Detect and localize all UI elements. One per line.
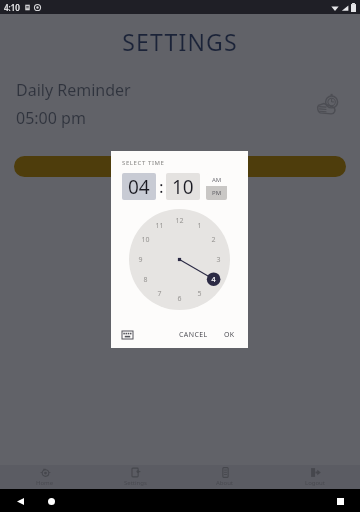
button[interactable]: 5 <box>193 287 206 300</box>
staticText: About <box>216 479 234 487</box>
staticText: : <box>159 175 164 198</box>
button[interactable]: OK <box>220 327 239 343</box>
button[interactable]: 10 <box>139 233 152 246</box>
staticText: Home <box>36 479 54 487</box>
button[interactable]: 6 <box>173 292 186 305</box>
staticText: 5 <box>197 289 202 299</box>
button[interactable]: 4 <box>207 273 220 286</box>
button[interactable] <box>14 156 346 177</box>
button[interactable]: Logout <box>270 465 360 489</box>
button[interactable]: 04 <box>122 173 156 200</box>
staticText: 9 <box>138 255 143 265</box>
staticText: 10 <box>172 174 194 200</box>
button[interactable]: 2 <box>207 233 220 246</box>
staticText: 6 <box>177 294 182 304</box>
button[interactable]: 3 <box>212 253 225 266</box>
button[interactable]: AM <box>206 173 227 186</box>
button[interactable]: Switch to text input <box>119 328 135 342</box>
button[interactable]: 12 <box>173 214 186 227</box>
staticText: 11 <box>155 221 164 231</box>
staticText: 12 <box>175 216 184 226</box>
staticText: 4:10 <box>4 2 20 13</box>
staticText: SELECT TIME <box>122 159 165 167</box>
button[interactable]: 10 <box>166 173 200 200</box>
staticText: 05:00 pm <box>16 107 86 129</box>
button[interactable]: 8 <box>139 273 152 286</box>
button[interactable]: Recent apps <box>333 494 347 508</box>
staticText: AM <box>212 176 222 184</box>
staticText: Daily Reminder <box>16 79 131 101</box>
staticText: OK <box>224 330 235 340</box>
button[interactable]: Daily Reminder <box>0 79 360 129</box>
button[interactable]: 9 <box>134 253 147 266</box>
staticText: 7 <box>157 289 162 299</box>
staticText: SETTINGS <box>0 26 360 57</box>
staticText: Logout <box>305 479 325 487</box>
staticText: PM <box>212 189 222 197</box>
staticText: 04 <box>128 174 150 200</box>
button[interactable]: Set reminder time <box>314 89 344 119</box>
staticText: 10 <box>141 235 150 245</box>
button[interactable]: PM <box>206 186 227 200</box>
staticText: 8 <box>143 275 148 285</box>
button[interactable]: CANCEL <box>175 327 212 343</box>
staticText: CANCEL <box>179 330 208 340</box>
staticText: 2 <box>211 235 216 245</box>
staticText: 1 <box>197 221 202 231</box>
button[interactable]: Back <box>13 494 27 508</box>
button[interactable]: 11 <box>153 219 166 232</box>
staticText: 4 <box>211 275 216 285</box>
staticText: Settings <box>124 479 147 487</box>
staticText: 3 <box>216 255 221 265</box>
button[interactable]: 1 <box>193 219 206 232</box>
button[interactable]: 7 <box>153 287 166 300</box>
button[interactable]: Home <box>44 494 58 508</box>
